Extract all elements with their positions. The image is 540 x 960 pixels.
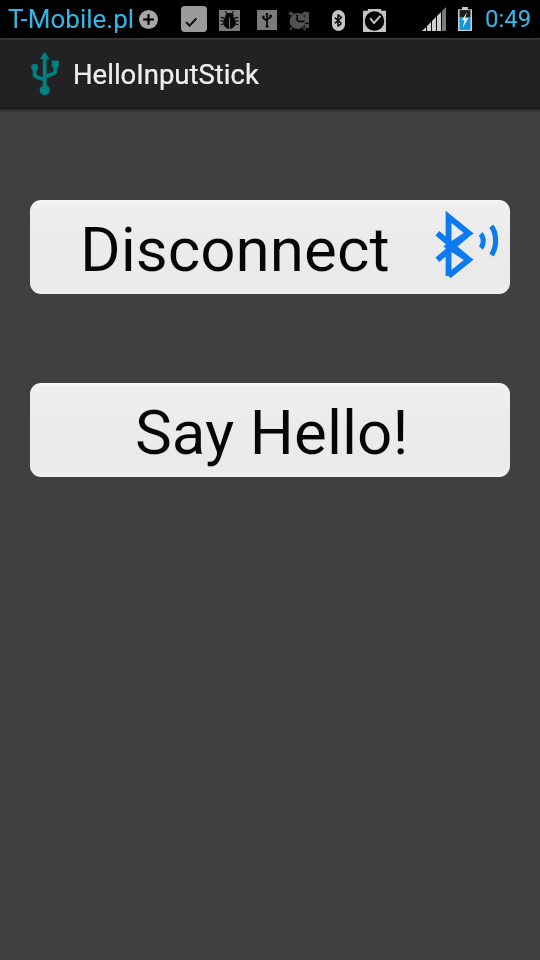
other: Bluetooth connected — [434, 217, 490, 276]
staticText: Say Hello! — [135, 396, 409, 469]
staticText: HelloInputStick — [73, 58, 259, 90]
staticText: T-Mobile.pl — [8, 4, 135, 34]
staticText: Disconnect — [80, 213, 390, 286]
button[interactable]: Disconnect — [30, 200, 510, 294]
button[interactable]: Say Hello! — [30, 383, 510, 477]
staticText: 0:49 — [485, 5, 532, 33]
